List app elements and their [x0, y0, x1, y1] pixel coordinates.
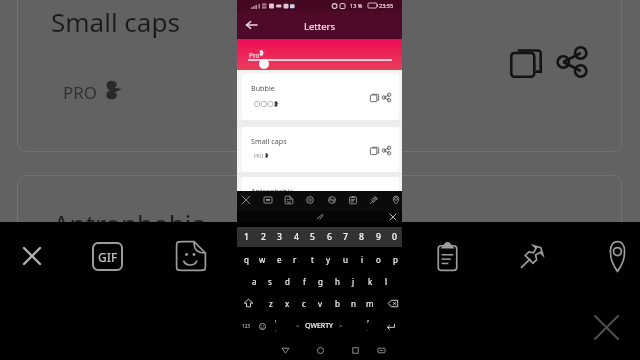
button[interactable]: p	[388, 252, 402, 266]
staticText: 5	[310, 231, 315, 243]
button[interactable]: e	[272, 252, 286, 266]
staticText: Pro	[249, 51, 260, 60]
button[interactable]: 2	[256, 230, 270, 244]
button[interactable]: GIF	[92, 242, 123, 271]
staticText: d	[285, 276, 290, 287]
button[interactable]: sticker	[282, 193, 295, 206]
button[interactable]: z	[264, 296, 278, 310]
button[interactable]: q	[239, 252, 253, 266]
button[interactable]: Close suggestions	[388, 212, 398, 222]
button[interactable]: d	[280, 274, 294, 288]
button[interactable]: l	[379, 274, 393, 288]
staticText: k	[368, 276, 373, 287]
staticText: Small caps	[251, 136, 287, 146]
button[interactable]: Enter	[383, 319, 397, 333]
button[interactable]: o	[371, 252, 385, 266]
button[interactable]: Close	[590, 311, 623, 344]
button[interactable]: 8	[354, 230, 368, 244]
button[interactable]: i	[355, 252, 369, 266]
staticText: t	[311, 254, 314, 265]
staticText: QWERTY	[305, 321, 334, 331]
button[interactable]: c	[297, 296, 311, 310]
button[interactable]: pin	[367, 193, 380, 206]
button[interactable]: n	[346, 296, 360, 310]
button[interactable]: Keyboard	[374, 343, 388, 357]
staticText: l	[385, 276, 388, 287]
button[interactable]: Location	[602, 236, 633, 277]
button[interactable]: v	[313, 296, 327, 310]
button[interactable]: w	[255, 252, 269, 266]
staticText: !	[275, 319, 277, 325]
button[interactable]: gear	[303, 193, 316, 206]
button[interactable]: Back	[238, 12, 264, 38]
button[interactable]: Pin	[515, 238, 551, 274]
button[interactable]: Share	[552, 42, 592, 82]
button[interactable]: Copy	[506, 42, 546, 82]
button[interactable]: Copy	[367, 143, 381, 157]
button[interactable]: loc	[389, 193, 402, 206]
button[interactable]: b	[330, 296, 344, 310]
button[interactable]: ?	[361, 317, 375, 335]
staticText: Letters	[304, 20, 336, 33]
button[interactable]: translate	[325, 193, 338, 206]
button[interactable]: Emoji	[255, 319, 269, 333]
button[interactable]: s	[263, 274, 277, 288]
button[interactable]: f	[297, 274, 311, 288]
button[interactable]: 1	[239, 230, 253, 244]
button[interactable]: 3	[272, 230, 286, 244]
button[interactable]: Backspace	[386, 296, 400, 310]
button[interactable]: Stickers	[171, 236, 211, 276]
button[interactable]: close	[239, 193, 252, 206]
button[interactable]: Antrophobia	[242, 177, 399, 201]
staticText: PRO	[63, 81, 98, 104]
button[interactable]: t	[305, 252, 319, 266]
button[interactable]: 4	[289, 230, 303, 244]
staticText: v	[318, 298, 323, 309]
button[interactable]: Recents	[348, 343, 362, 357]
button[interactable]: r	[288, 252, 302, 266]
staticText: u	[343, 254, 348, 265]
button[interactable]: u	[338, 252, 352, 266]
staticText: Small caps	[51, 4, 180, 39]
button[interactable]: a	[247, 274, 261, 288]
button[interactable]: x	[280, 296, 294, 310]
button[interactable]: Copy	[367, 90, 381, 104]
button[interactable]: h	[330, 274, 344, 288]
staticText: z	[269, 298, 273, 309]
button[interactable]: 123	[237, 319, 255, 333]
staticText: f	[303, 276, 306, 287]
staticText: <	[296, 322, 300, 330]
button[interactable]: 5	[305, 230, 319, 244]
button[interactable]: 6	[322, 230, 336, 244]
staticText: h	[335, 276, 340, 287]
button[interactable]: Back	[278, 343, 292, 357]
staticText: 9	[376, 231, 381, 243]
staticText: 3	[277, 231, 282, 243]
button[interactable]: Share	[379, 90, 393, 104]
button[interactable]: 0	[387, 230, 401, 244]
button[interactable]: clip	[346, 193, 359, 206]
button[interactable]: Size slider	[259, 59, 269, 69]
button[interactable]: gif	[261, 193, 274, 206]
staticText: c	[302, 298, 306, 309]
button[interactable]: Clipboard	[432, 237, 463, 276]
button[interactable]: k	[363, 274, 377, 288]
button[interactable]: j	[346, 274, 360, 288]
button[interactable]: Close	[19, 243, 45, 269]
button[interactable]: m	[363, 296, 377, 310]
staticText: y	[326, 254, 331, 265]
button[interactable]: 7	[338, 230, 352, 244]
button[interactable]: Bubble	[242, 74, 399, 120]
button[interactable]: g	[313, 274, 327, 288]
staticText: w	[259, 254, 266, 265]
button[interactable]: Home	[313, 343, 327, 357]
button[interactable]: Small caps	[242, 127, 399, 172]
button[interactable]: Share	[379, 143, 393, 157]
button[interactable]: Shift	[241, 296, 255, 310]
staticText: 1	[244, 231, 249, 243]
button[interactable]: 9	[371, 230, 385, 244]
button[interactable]: <	[289, 319, 349, 333]
button[interactable]: y	[321, 252, 335, 266]
button[interactable]: !	[269, 317, 283, 335]
staticText: 123	[242, 323, 250, 329]
